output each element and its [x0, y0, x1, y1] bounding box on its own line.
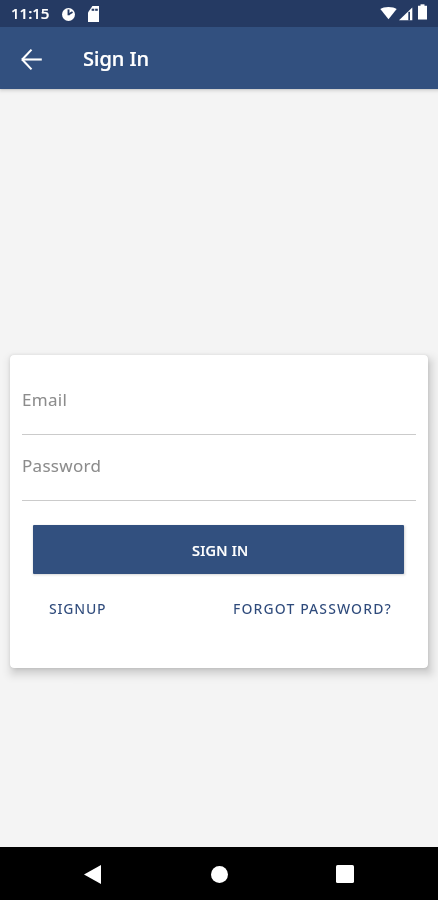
staticText: 11:15 — [11, 3, 50, 23]
button[interactable]: Password — [22, 447, 416, 501]
button[interactable]: Email — [22, 381, 416, 435]
button[interactable]: Back — [4, 31, 58, 85]
button[interactable]: Back — [68, 850, 116, 898]
staticText: SIGNUP — [49, 599, 107, 618]
button[interactable]: SIGNUP — [43, 593, 113, 624]
staticText: Sign In — [83, 45, 150, 72]
button[interactable]: Home — [195, 850, 243, 898]
button[interactable]: Recent apps — [321, 850, 369, 898]
staticText: Email — [22, 388, 68, 411]
staticText: Password — [22, 454, 102, 477]
staticText: FORGOT PASSWORD? — [233, 599, 392, 618]
button[interactable]: SIGN IN — [33, 525, 404, 574]
staticText: SIGN IN — [192, 540, 249, 560]
button[interactable]: FORGOT PASSWORD? — [227, 593, 398, 624]
